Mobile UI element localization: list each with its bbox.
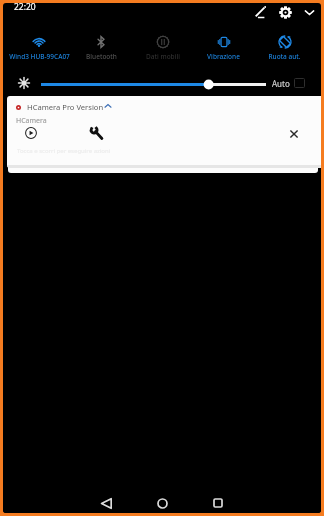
button[interactable]: Back: [89, 492, 123, 513]
button[interactable]: Close: [284, 124, 303, 143]
staticText: Ruota aut.: [268, 52, 301, 61]
button[interactable]: Wind3 HUB-99CA07: [8, 34, 70, 65]
button[interactable]: Play: [21, 123, 41, 143]
button[interactable]: Ruota aut.: [254, 34, 315, 65]
button[interactable]: Settings: [274, 3, 296, 22]
button[interactable]: Dati mobili: [132, 34, 193, 65]
staticText: HCamera: [16, 116, 47, 126]
staticText: 22:20: [14, 3, 36, 13]
button[interactable]: Home: [145, 492, 179, 513]
button[interactable]: Collapse panel: [298, 3, 320, 22]
button[interactable]: Auto: [272, 72, 305, 92]
staticText: Auto: [272, 78, 290, 89]
button[interactable]: Vibrazione: [193, 34, 254, 65]
button[interactable]: Brightness: [11, 73, 36, 93]
button[interactable]: Brightness slider: [37, 73, 270, 93]
button[interactable]: Edit: [249, 3, 271, 22]
staticText: Bluetooth: [86, 52, 117, 61]
staticText: Dati mobili: [146, 52, 180, 61]
staticText: HCamera Pro Version: [27, 102, 104, 112]
staticText: Vibrazione: [207, 52, 240, 61]
staticText: Wind3 HUB-99CA07: [9, 52, 70, 61]
button[interactable]: HCamera Pro Version: [7, 96, 321, 168]
staticText: Tocca e scorri per eseguire azioni: [17, 147, 111, 155]
button[interactable]: Settings: [86, 122, 106, 142]
button[interactable]: Recents: [201, 492, 235, 513]
button[interactable]: Bluetooth: [70, 34, 132, 65]
